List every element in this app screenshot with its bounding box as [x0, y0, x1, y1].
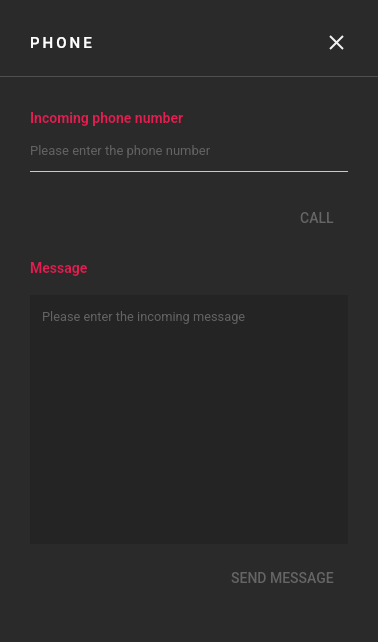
- button[interactable]: Close: [316, 22, 356, 62]
- button[interactable]: Please enter the incoming message: [30, 295, 348, 544]
- staticText: Incoming phone number: [30, 110, 184, 126]
- staticText: CALL: [300, 210, 334, 226]
- button[interactable]: Please enter the phone number: [30, 141, 348, 173]
- staticText: SEND MESSAGE: [231, 570, 334, 586]
- button[interactable]: CALL: [285, 204, 349, 232]
- button[interactable]: SEND MESSAGE: [216, 564, 349, 592]
- staticText: Message: [30, 260, 88, 276]
- staticText: PHONE: [30, 34, 95, 52]
- staticText: Please enter the phone number: [30, 143, 211, 158]
- staticText: Please enter the incoming message: [42, 309, 246, 324]
